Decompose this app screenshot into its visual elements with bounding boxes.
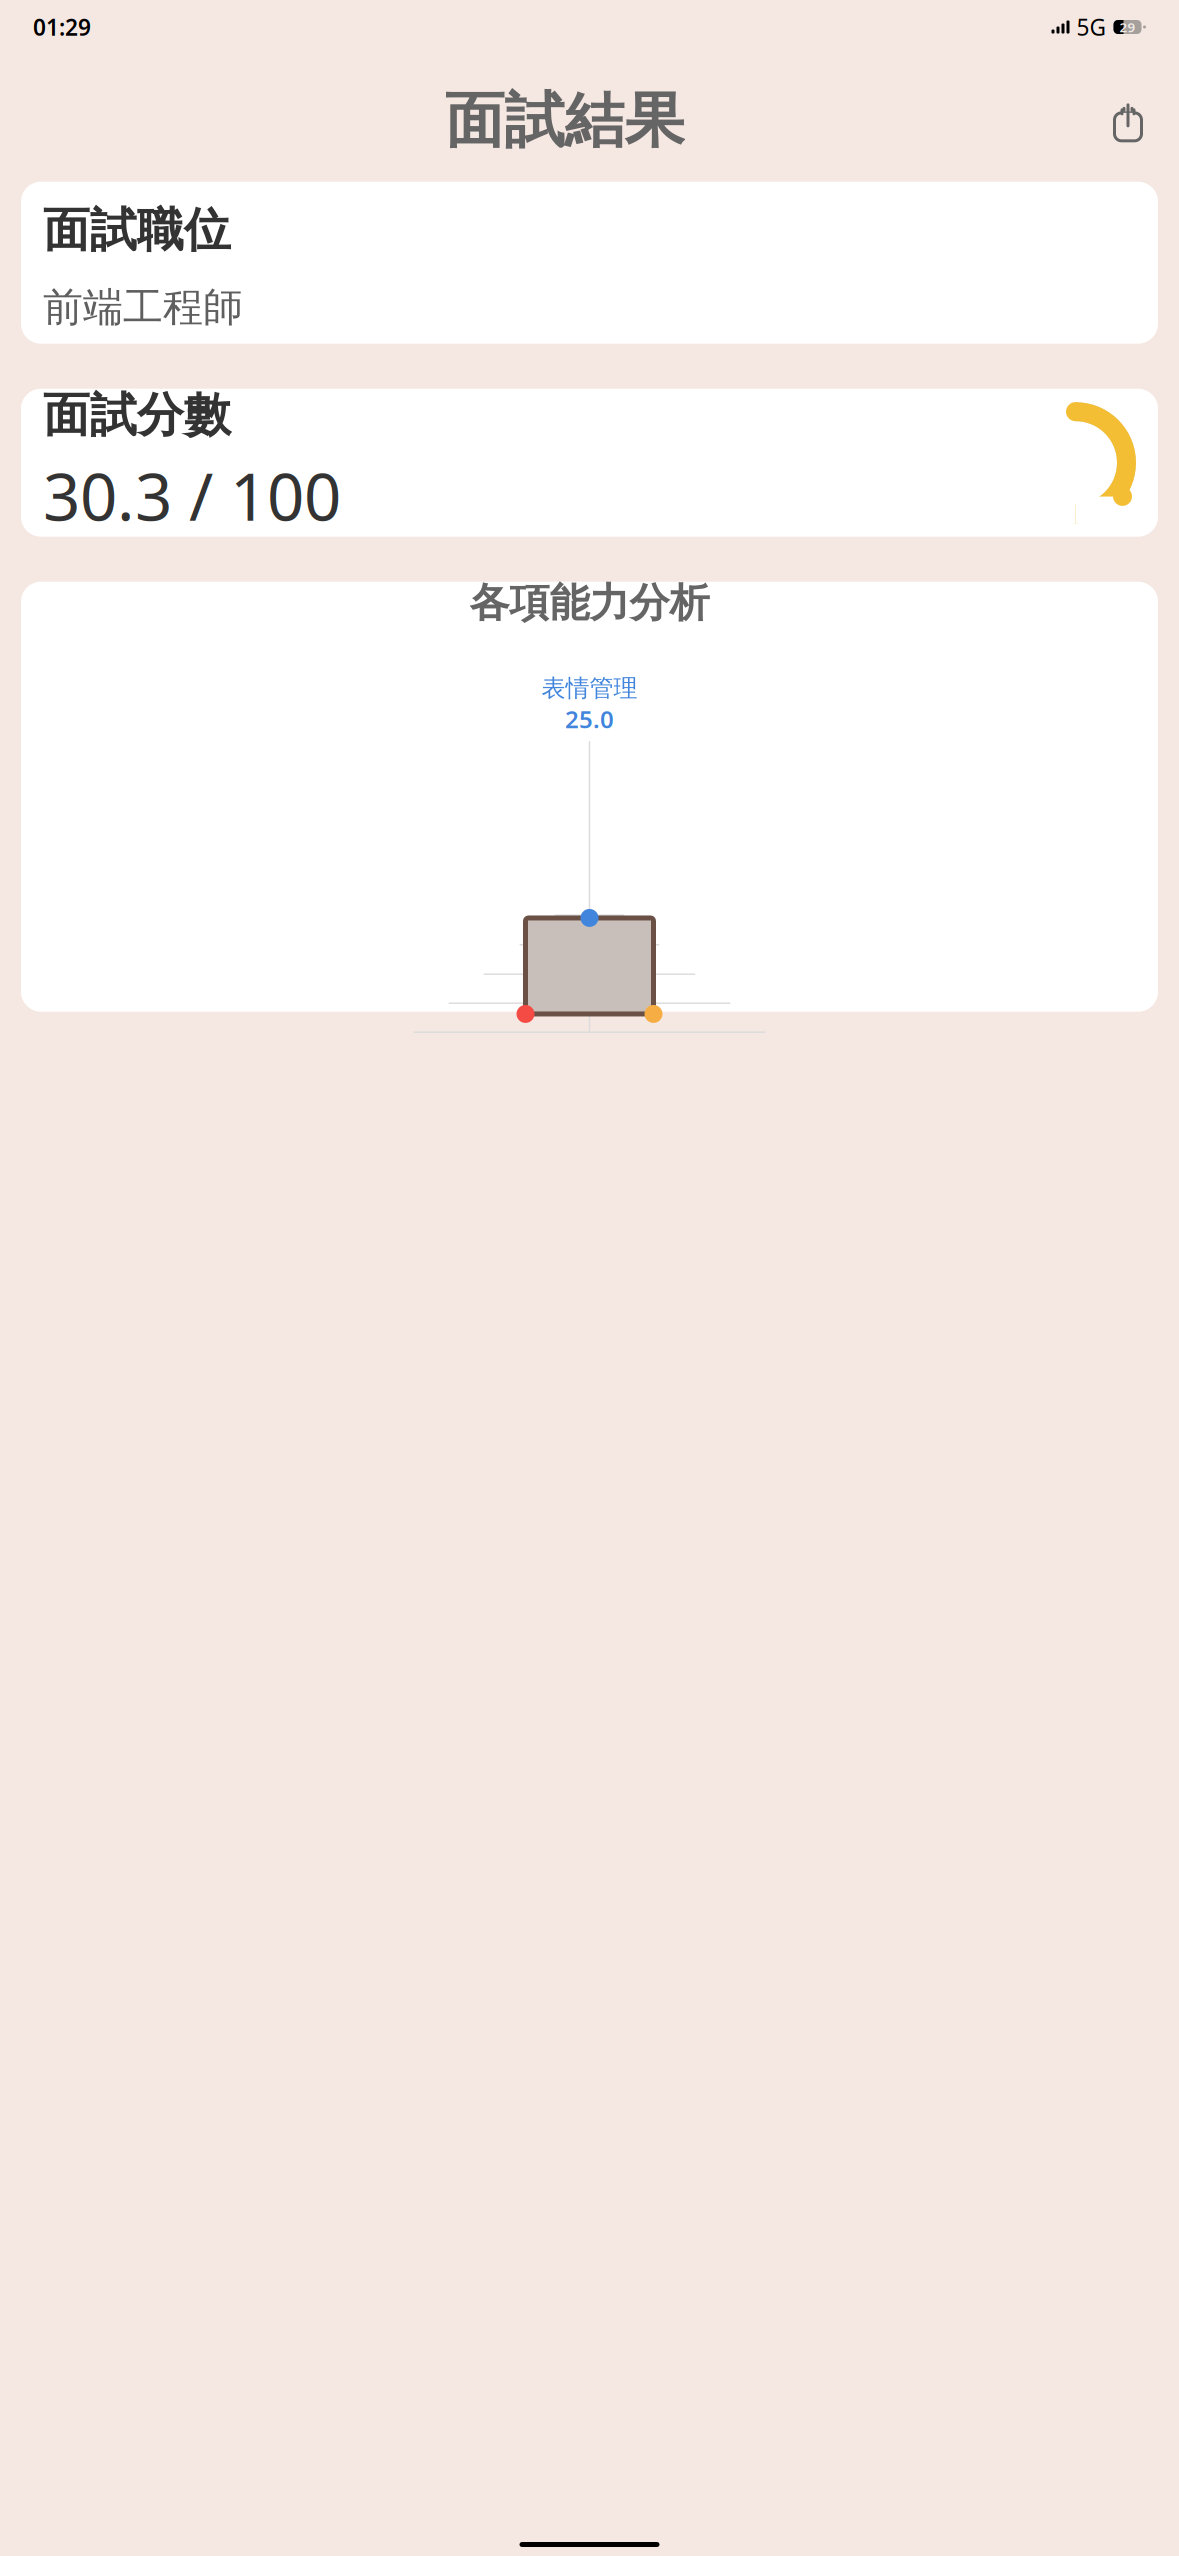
staticText: 01:29 — [33, 12, 91, 42]
staticText: 各項能力分析 — [469, 578, 709, 628]
staticText: 表情管理 — [541, 674, 637, 703]
button[interactable]: Share — [1103, 94, 1153, 147]
staticText: 面試結果 — [444, 84, 684, 158]
staticText: 29 — [1119, 18, 1135, 36]
staticText: 25.0 — [565, 703, 614, 735]
staticText: 前端工程師 — [43, 283, 243, 332]
staticText: 5G — [1076, 12, 1106, 42]
staticText: 面試職位 — [43, 201, 231, 259]
staticText: 面試分數 — [43, 387, 231, 444]
staticText: 30.3 / 100 — [43, 452, 341, 539]
